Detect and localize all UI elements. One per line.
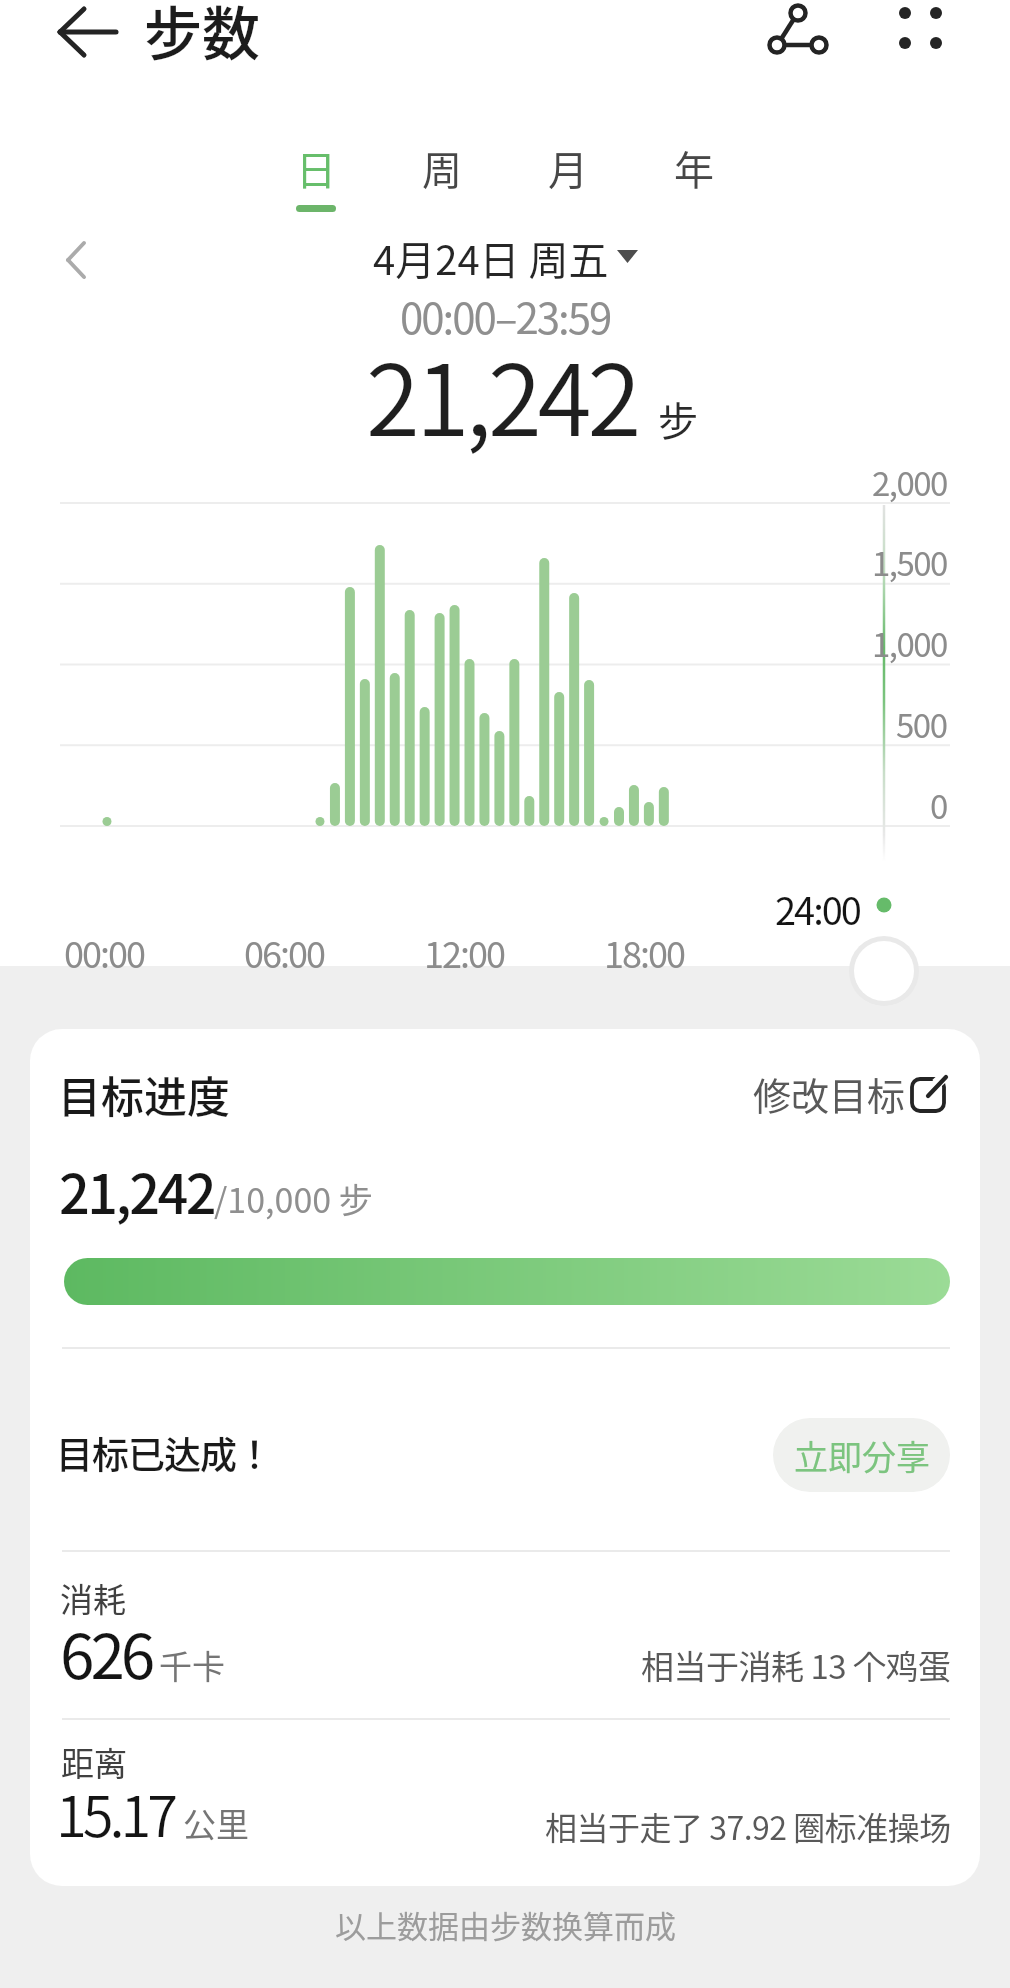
button[interactable] xyxy=(886,0,956,62)
staticText: 4月24日 周五 xyxy=(373,229,609,281)
staticText: 18:00 xyxy=(604,926,684,978)
staticText: 目标进度 xyxy=(58,1063,230,1125)
button[interactable]: 修改目标 xyxy=(745,1064,960,1124)
staticText: 24:00 xyxy=(775,881,860,936)
staticText: 相当于消耗 13 个鸡蛋 xyxy=(641,1641,951,1689)
button[interactable]: 月 xyxy=(523,136,613,220)
staticText: 年 xyxy=(674,139,714,197)
button[interactable]: 日 xyxy=(271,136,361,220)
button[interactable]: 年 xyxy=(649,136,739,220)
staticText: 公里 xyxy=(183,1799,249,1847)
staticText: 0 xyxy=(930,781,947,829)
staticText: 周 xyxy=(422,139,462,197)
staticText: 2,000 xyxy=(872,458,947,506)
staticText: 日 xyxy=(296,139,336,197)
staticText: 500 xyxy=(896,700,947,748)
button[interactable] xyxy=(56,232,100,288)
button[interactable] xyxy=(40,4,130,60)
staticText: 千卡 xyxy=(159,1641,225,1689)
staticText: 消耗 xyxy=(60,1574,126,1622)
button[interactable]: 立即分享 xyxy=(773,1418,950,1492)
button[interactable]: 4月24日 周五 xyxy=(373,229,638,281)
staticText: 00:00–23:59 xyxy=(400,285,611,346)
staticText: 15.17 xyxy=(56,1772,175,1853)
staticText: 月 xyxy=(548,139,588,197)
staticText: 00:00 xyxy=(64,926,144,978)
staticText: 1,500 xyxy=(872,538,947,586)
staticText: 立即分享 xyxy=(794,1431,930,1480)
staticText: 12:00 xyxy=(424,926,504,978)
staticText: 21,242 xyxy=(366,322,638,464)
staticText: 步 xyxy=(658,390,698,448)
button[interactable] xyxy=(850,938,918,1004)
staticText: 1,000 xyxy=(872,619,947,667)
staticText: 修改目标 xyxy=(753,1066,906,1121)
staticText: 以上数据由步数换算而成 xyxy=(335,1902,676,1947)
staticText: /10,000 步 xyxy=(214,1174,373,1223)
staticText: 步数 xyxy=(144,0,261,72)
staticText: 21,242 xyxy=(59,1151,214,1229)
staticText: 目标已达成！ xyxy=(56,1426,272,1480)
staticText: 626 xyxy=(60,1607,152,1697)
button[interactable]: 周 xyxy=(397,136,487,220)
staticText: 06:00 xyxy=(244,926,324,978)
button[interactable] xyxy=(758,0,842,62)
staticText: 相当于走了 37.92 圈标准操场 xyxy=(545,1803,951,1849)
staticText: 距离 xyxy=(61,1738,127,1786)
